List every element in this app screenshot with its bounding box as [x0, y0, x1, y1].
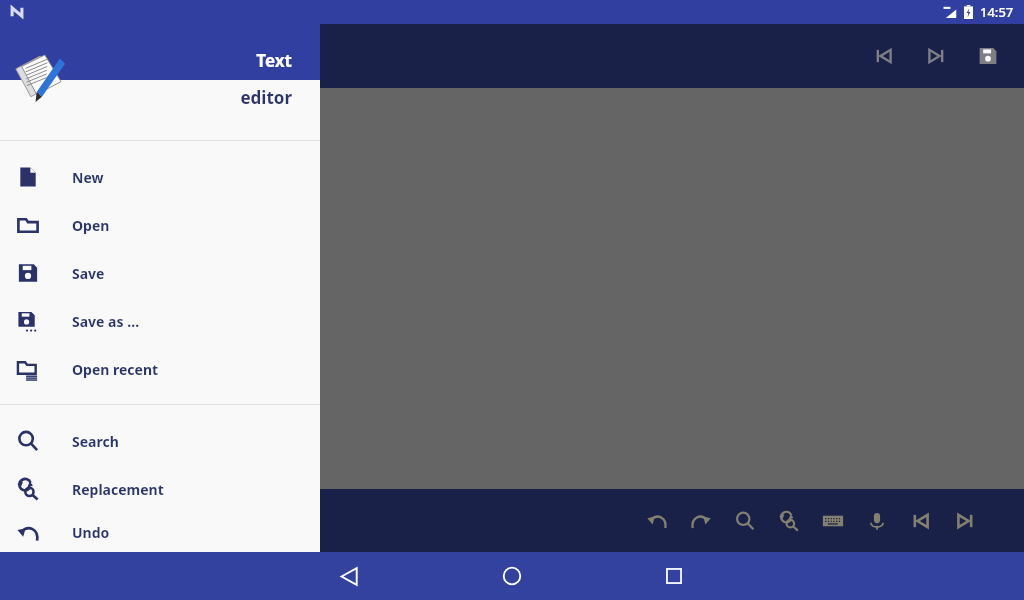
- staticText: Undo: [72, 523, 110, 542]
- button[interactable]: Redo: [684, 504, 718, 538]
- button[interactable]: Home: [490, 554, 534, 598]
- button[interactable]: Go to end: [948, 504, 982, 538]
- button[interactable]: New: [0, 153, 320, 201]
- staticText: Open: [72, 216, 110, 235]
- button[interactable]: Go to start: [904, 504, 938, 538]
- staticText: Save as …: [72, 312, 140, 331]
- staticText: Replacement: [72, 480, 164, 499]
- button[interactable]: Save: [964, 32, 1012, 80]
- staticText: 14:57: [980, 3, 1014, 21]
- button[interactable]: Replacement: [0, 465, 320, 513]
- button[interactable]: Replace: [772, 504, 806, 538]
- button[interactable]: Keyboard: [816, 504, 850, 538]
- staticText: Open recent: [72, 360, 159, 379]
- button[interactable]: Back: [327, 554, 371, 598]
- button[interactable]: Open recent: [0, 345, 320, 393]
- button[interactable]: Recent apps: [652, 554, 696, 598]
- staticText: editor: [240, 86, 292, 109]
- staticText: Text: [256, 49, 292, 72]
- button[interactable]: Open: [0, 201, 320, 249]
- staticText: New: [72, 168, 104, 187]
- button[interactable]: Search: [728, 504, 762, 538]
- button[interactable]: Save as …: [0, 297, 320, 345]
- button[interactable]: Undo: [640, 504, 674, 538]
- button[interactable]: Go to end: [912, 32, 960, 80]
- button[interactable]: Search: [0, 417, 320, 465]
- button[interactable]: Undo: [0, 513, 320, 552]
- button[interactable]: Save: [0, 249, 320, 297]
- staticText: Search: [72, 432, 119, 451]
- button[interactable]: Voice input: [860, 504, 894, 538]
- staticText: Save: [72, 264, 105, 283]
- button[interactable]: Go to start: [860, 32, 908, 80]
